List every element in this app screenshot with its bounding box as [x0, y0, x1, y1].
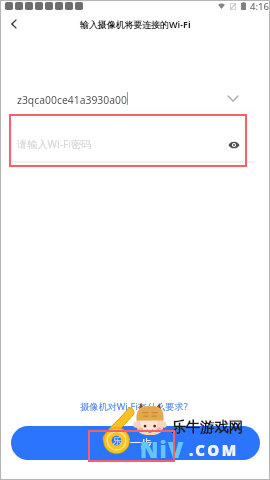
- staticText: 下一步: [119, 436, 152, 450]
- staticText: 请输入Wi-Fi密码: [17, 137, 92, 151]
- staticText: .COM: [189, 440, 239, 460]
- staticText: z3qca00ce41a3930a00: [17, 93, 127, 107]
- button[interactable]: Choose Wi-Fi: [224, 90, 241, 107]
- staticText: 输入摄像机将要连接的Wi-Fi: [80, 18, 191, 30]
- button[interactable]: Show password: [227, 138, 241, 152]
- staticText: 4:16: [250, 0, 270, 12]
- staticText: 乐牛游戏网: [171, 418, 243, 436]
- button[interactable]: 摄像机对Wi-Fi有什么要求?: [80, 400, 188, 413]
- staticText: NiV: [140, 434, 185, 464]
- button[interactable]: 下一步: [11, 426, 260, 460]
- staticText: 乐: [113, 435, 122, 446]
- button[interactable]: Back: [5, 15, 22, 32]
